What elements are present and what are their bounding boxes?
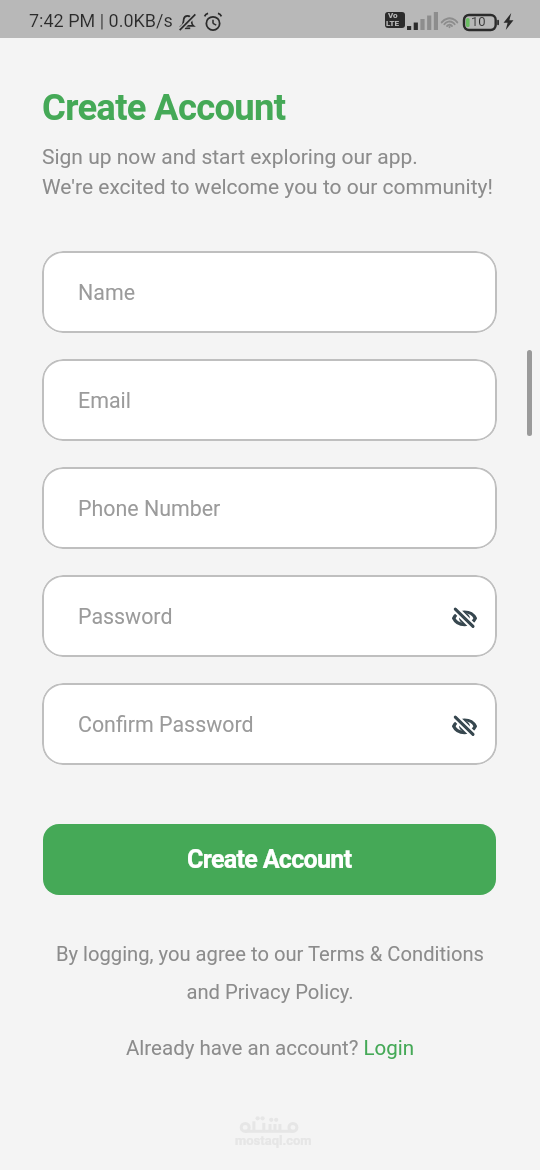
staticText: LTE [386,19,399,28]
button[interactable]: Confirm Password [42,683,497,765]
button[interactable]: Password [42,575,497,657]
staticText: Vo [388,12,398,20]
staticText: Create Account [42,86,286,129]
staticText: Confirm Password [78,712,254,737]
button[interactable]: Email [42,359,497,441]
staticText: Email [78,388,131,413]
button[interactable]: Toggle password visibility [449,710,479,740]
staticText: 10 [471,14,486,29]
staticText: By logging, you agree to our Terms & Con… [0,942,540,1004]
staticText: Create Account [187,845,352,874]
button[interactable]: Phone Number [42,467,497,549]
button[interactable]: Name [42,251,497,333]
staticText: Phone Number [78,496,221,521]
staticText: mostaql.com [235,1133,312,1148]
button[interactable]: Already have an account? Login [126,1036,415,1060]
button[interactable]: Create Account [43,824,496,895]
staticText: Sign up now and start exploring our app.… [42,145,493,199]
staticText: 7:42 PM | 0.0KB/s [29,10,173,31]
staticText: Password [78,604,173,629]
button[interactable]: Toggle password visibility [449,602,479,632]
staticText: Name [78,280,135,305]
